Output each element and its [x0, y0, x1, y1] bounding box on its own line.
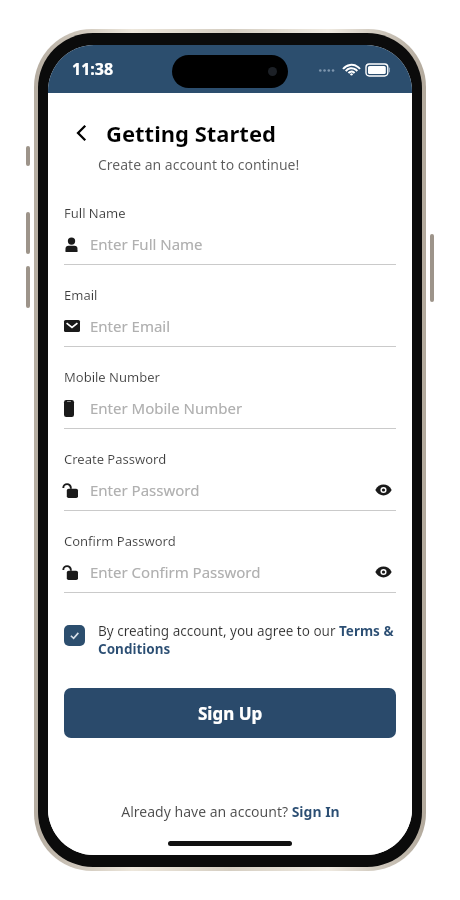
staticText: Getting Started: [106, 118, 276, 148]
staticText: Enter Email: [90, 316, 171, 336]
staticText: Create an account to continue!: [98, 155, 300, 174]
button[interactable]: Mobile Number: [64, 368, 396, 450]
button[interactable]: Back: [64, 115, 100, 151]
button[interactable]: Already have an account? Sign In: [48, 802, 412, 821]
staticText: Enter Confirm Password: [90, 562, 261, 582]
staticText: Sign Up: [198, 702, 263, 725]
staticText: Create Password: [64, 450, 167, 468]
button[interactable]: Full Name: [64, 204, 396, 286]
staticText: Confirm Password: [64, 532, 176, 550]
staticText: Full Name: [64, 204, 126, 222]
staticText: 11:38: [72, 58, 114, 80]
staticText: Enter Full Name: [90, 234, 203, 254]
staticText: Enter Mobile Number: [90, 398, 243, 418]
button[interactable]: Sign Up: [64, 688, 396, 738]
staticText: Enter Password: [90, 480, 200, 500]
staticText: Email: [64, 286, 98, 304]
button[interactable]: Toggle password visibility: [370, 559, 396, 585]
staticText: Mobile Number: [64, 368, 160, 386]
button[interactable]: Email: [64, 286, 396, 368]
staticText: By creating account, you agree to our Te…: [98, 622, 396, 658]
button[interactable]: Create Password: [64, 450, 396, 532]
staticText: Already have an account? Sign In: [121, 802, 340, 821]
button[interactable]: Toggle password visibility: [370, 477, 396, 503]
button[interactable]: By creating account, you agree to our Te…: [64, 622, 396, 658]
button[interactable]: Confirm Password: [64, 532, 396, 614]
